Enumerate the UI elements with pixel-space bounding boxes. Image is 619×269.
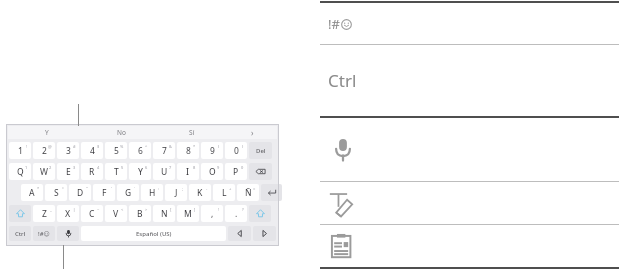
button[interactable]: V [105, 205, 127, 222]
button[interactable]: Handwriting [320, 182, 619, 224]
button[interactable]: 7 [153, 142, 175, 159]
staticText: O [209, 166, 216, 178]
staticText: J [175, 187, 178, 199]
staticText: D [77, 187, 84, 199]
button[interactable]: Enter [261, 184, 282, 201]
staticText: Ctrl [328, 69, 357, 92]
staticText: Y [45, 128, 49, 137]
button[interactable]: A [21, 184, 43, 201]
button[interactable]: M [177, 205, 199, 222]
staticText: Y [138, 166, 143, 178]
button[interactable]: X [57, 205, 79, 222]
staticText: 2 [49, 165, 52, 170]
button[interactable]: 3 [57, 142, 79, 159]
button[interactable]: Español (US) [81, 226, 226, 241]
button[interactable]: Voice input [57, 226, 79, 241]
button[interactable]: H [141, 184, 163, 201]
button[interactable]: Del [249, 142, 272, 159]
button[interactable]: T [105, 163, 127, 180]
staticText: + [229, 186, 232, 191]
staticText: P [233, 166, 239, 178]
button[interactable]: 0 [225, 142, 247, 159]
button[interactable]: 8 [177, 142, 199, 159]
staticText: !#☺ [38, 230, 50, 238]
button[interactable]: O [201, 163, 223, 180]
staticText: 8 [193, 165, 196, 170]
button[interactable]: Y [8, 126, 86, 139]
staticText: T [114, 166, 119, 178]
button[interactable]: Y [129, 163, 151, 180]
staticText: H [149, 187, 156, 199]
button[interactable]: G [117, 184, 139, 201]
staticText: M [184, 208, 192, 220]
button[interactable]: D [69, 184, 91, 201]
staticText: R [89, 166, 95, 178]
button[interactable]: K [189, 184, 211, 201]
button[interactable]: , [201, 205, 223, 222]
staticText: W [40, 166, 48, 178]
staticText: 8 [186, 145, 191, 157]
staticText: - [206, 186, 208, 191]
button[interactable]: B [129, 205, 151, 222]
button[interactable]: R [81, 163, 103, 180]
staticText: 6 [145, 165, 148, 170]
staticText: # [73, 144, 76, 149]
button[interactable]: Backspace [249, 163, 272, 180]
button[interactable]: No [86, 126, 156, 139]
button[interactable]: !# [320, 3, 619, 44]
button[interactable]: 6 [129, 142, 151, 159]
button[interactable]: 9 [201, 142, 223, 159]
button[interactable]: U [153, 163, 175, 180]
button[interactable]: !#☺ [33, 226, 55, 241]
staticText: › [251, 127, 254, 138]
button[interactable]: Shift [9, 205, 31, 222]
button[interactable]: E [57, 163, 79, 180]
button[interactable]: L [213, 184, 235, 201]
button[interactable]: Z [33, 205, 55, 222]
staticText: !# [328, 15, 340, 33]
staticText: : [158, 186, 160, 191]
button[interactable]: 2 [33, 142, 55, 159]
staticText: ; [182, 186, 184, 191]
button[interactable]: Ctrl [9, 226, 31, 241]
staticText: Del [256, 147, 266, 155]
button[interactable]: J [165, 184, 187, 201]
staticText: G [125, 187, 132, 199]
staticText: . [235, 208, 238, 220]
button[interactable]: Shift [249, 205, 271, 222]
staticText: % [120, 144, 124, 149]
staticText: 7 [162, 145, 167, 157]
staticText: V [113, 208, 119, 220]
button[interactable]: Ctrl [320, 45, 619, 116]
button[interactable]: Cursor right [253, 226, 276, 241]
staticText: 6 [138, 145, 143, 157]
staticText: ° [62, 186, 64, 191]
button[interactable]: Clipboard [320, 225, 619, 267]
staticText: 5 [114, 145, 119, 157]
staticText: Q [17, 166, 24, 178]
button[interactable]: I [177, 163, 199, 180]
button[interactable]: Cursor left [228, 226, 251, 241]
staticText: ? [242, 207, 244, 212]
button[interactable]: F [93, 184, 115, 201]
button[interactable]: 4 [81, 142, 103, 159]
button[interactable]: 1 [9, 142, 31, 159]
button[interactable]: Sí [156, 126, 228, 139]
button[interactable]: N [153, 205, 175, 222]
button[interactable]: More suggestions [228, 126, 277, 139]
button[interactable]: P [225, 163, 247, 180]
staticText: 4 [90, 145, 95, 157]
button[interactable]: Voice input [320, 118, 619, 181]
staticText: E [66, 166, 71, 178]
staticText: Sí [189, 128, 195, 137]
button[interactable]: C [81, 205, 103, 222]
button[interactable]: W [33, 163, 55, 180]
staticText: , [211, 208, 214, 220]
button[interactable]: 5 [105, 142, 127, 159]
button[interactable]: Q [9, 163, 31, 180]
button[interactable]: Ñ [237, 184, 259, 201]
button[interactable]: . [225, 205, 247, 222]
staticText: 4 [97, 165, 100, 170]
staticText: Z [42, 208, 47, 220]
button[interactable]: S [45, 184, 67, 201]
